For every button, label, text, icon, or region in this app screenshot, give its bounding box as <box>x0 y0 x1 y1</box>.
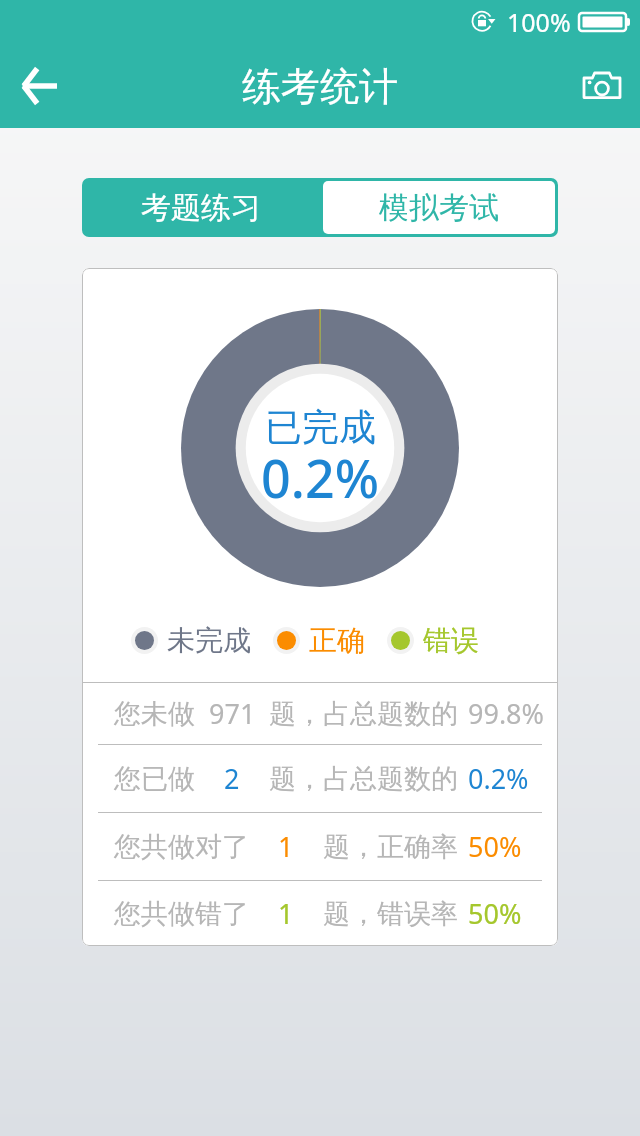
staticText: 您共做对了 <box>114 830 249 864</box>
staticText: 50% <box>468 828 522 865</box>
staticText: 99.8% <box>468 695 545 732</box>
staticText: 正确 <box>309 623 365 658</box>
staticText: 错误 <box>423 623 479 658</box>
button[interactable]: Back <box>7 54 71 118</box>
staticText: 考题练习 <box>141 189 261 227</box>
button[interactable]: Camera <box>570 54 634 118</box>
staticText: 1 <box>278 828 294 865</box>
staticText: 题，占总题数的 <box>269 762 458 796</box>
staticText: 50% <box>468 895 522 932</box>
staticText: 2 <box>224 760 240 797</box>
staticText: 已完成 <box>265 404 376 451</box>
staticText: 您未做 <box>114 697 195 731</box>
staticText: 您共做错了 <box>114 897 249 931</box>
staticText: 练考统计 <box>242 62 398 111</box>
staticText: 您已做 <box>114 762 195 796</box>
staticText: 题，错误率 <box>323 897 458 931</box>
staticText: 题，占总题数的 <box>269 697 458 731</box>
staticText: 971 <box>209 695 256 732</box>
staticText: 未完成 <box>167 623 251 658</box>
staticText: 1 <box>278 895 294 932</box>
button[interactable]: 考题练习 <box>82 178 320 237</box>
staticText: 题，正确率 <box>323 830 458 864</box>
staticText: 0.2% <box>261 442 379 513</box>
button[interactable]: 模拟考试 <box>323 181 555 234</box>
staticText: 模拟考试 <box>379 189 499 227</box>
staticText: 100% <box>507 5 571 39</box>
staticText: 0.2% <box>468 760 529 797</box>
